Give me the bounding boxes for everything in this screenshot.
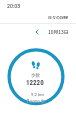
staticText: 20:03: [7, 3, 21, 9]
staticText: 10月13日: [48, 28, 69, 35]
button[interactable]: Previous day: [32, 26, 42, 38]
staticText: 歩数: [31, 72, 40, 78]
staticText: 12220: [26, 79, 44, 87]
staticText: 8000 歩: [30, 98, 45, 104]
staticText: 日々の記録: [48, 14, 68, 20]
button[interactable]: 日々の記録: [0, 11, 76, 23]
staticText: 9.2 km: [31, 92, 44, 97]
